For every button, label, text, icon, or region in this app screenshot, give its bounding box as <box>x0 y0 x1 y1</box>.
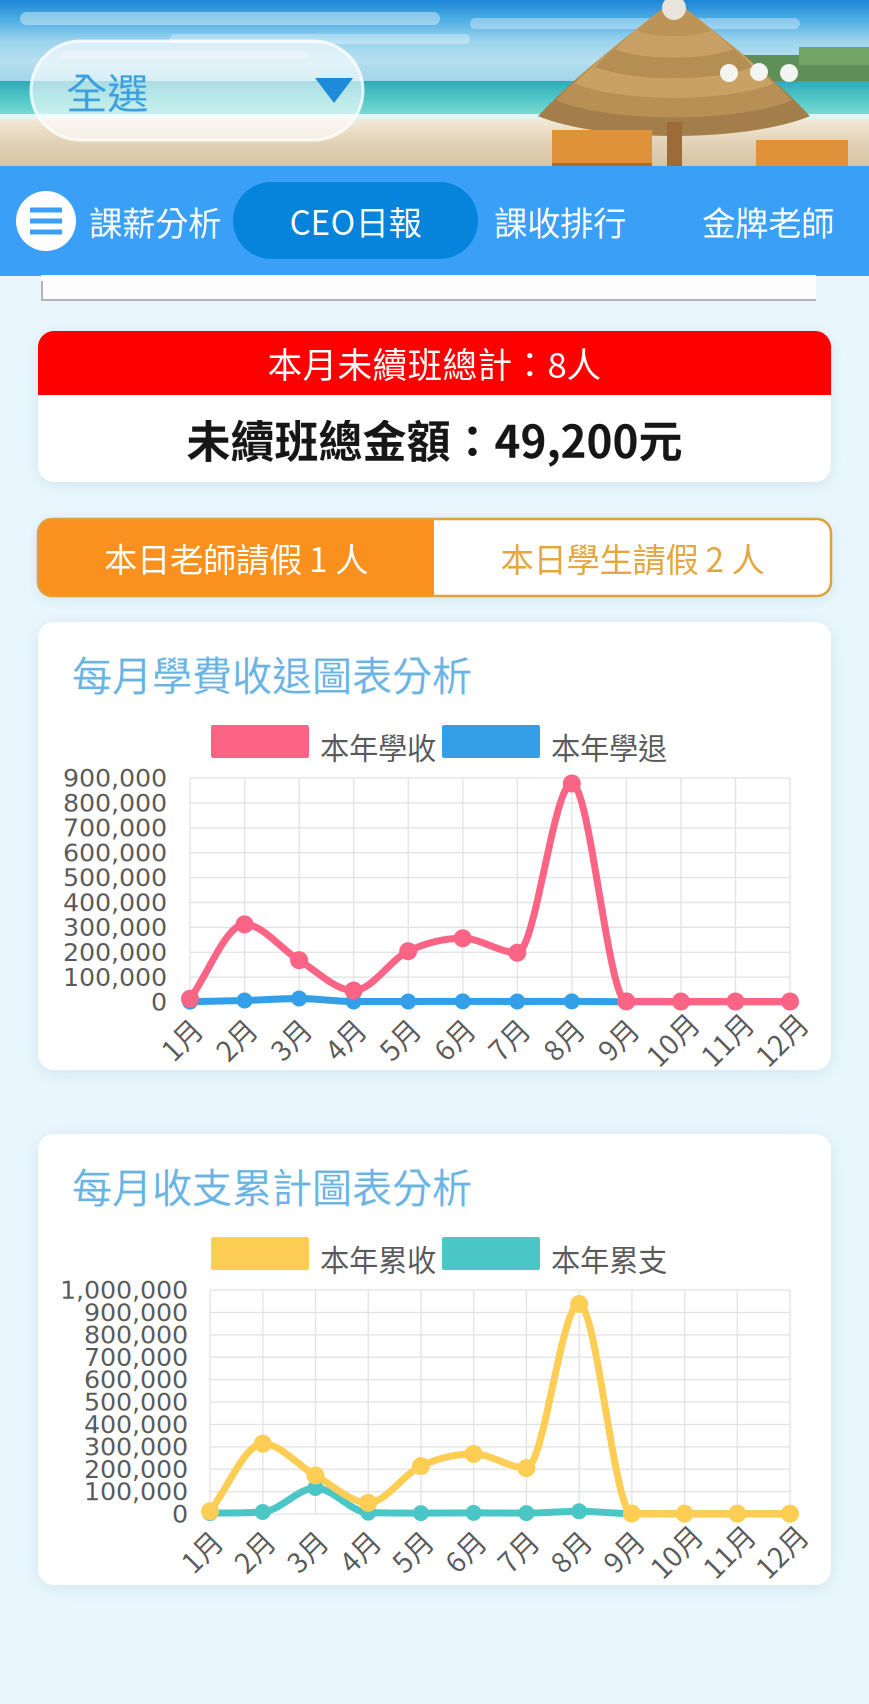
button[interactable]: 金牌老師 <box>698 193 838 249</box>
staticText: 本年累收 <box>320 1237 436 1279</box>
staticText: 11月 <box>696 1019 756 1059</box>
staticText: 5月 <box>390 1531 434 1571</box>
button[interactable]: 課收排行 <box>490 193 630 249</box>
staticText: 6月 <box>443 1531 487 1571</box>
staticText: 700,000 <box>63 813 167 842</box>
staticText: 本月未續班總計：8人 <box>267 338 601 388</box>
staticText: 900,000 <box>84 1298 188 1327</box>
staticText: 0 <box>172 1499 188 1529</box>
staticText: 10月 <box>645 1531 705 1571</box>
staticText: 800,000 <box>63 788 167 818</box>
staticText: 金牌老師 <box>702 197 834 245</box>
staticText: 課收排行 <box>494 197 626 245</box>
button[interactable]: 課薪分析 <box>85 193 225 249</box>
button[interactable]: 本日老師請假 1 人 <box>38 519 434 596</box>
staticText: 4月 <box>337 1531 381 1571</box>
staticText: 每月收支累計圖表分析 <box>72 1156 472 1214</box>
staticText: 5月 <box>377 1019 421 1059</box>
staticText: 11月 <box>698 1531 758 1571</box>
staticText: 400,000 <box>84 1410 188 1439</box>
staticText: 500,000 <box>84 1387 188 1417</box>
staticText: 本年學退 <box>551 725 667 767</box>
staticText: 10月 <box>642 1019 702 1059</box>
staticText: 200,000 <box>84 1454 188 1484</box>
staticText: CEO日報 <box>289 196 421 245</box>
staticText: 0 <box>151 987 167 1017</box>
staticText: 600,000 <box>63 838 167 867</box>
staticText: 8月 <box>541 1019 585 1059</box>
staticText: 700,000 <box>84 1342 188 1372</box>
staticText: 2月 <box>232 1531 276 1571</box>
staticText: 300,000 <box>63 913 167 942</box>
staticText: 8月 <box>548 1531 592 1571</box>
staticText: 3月 <box>284 1531 328 1571</box>
staticText: 400,000 <box>63 888 167 917</box>
staticText: 本年學收 <box>320 725 436 767</box>
staticText: 600,000 <box>84 1365 188 1394</box>
staticText: 12月 <box>751 1531 811 1571</box>
staticText: 200,000 <box>63 937 167 967</box>
staticText: 課薪分析 <box>89 197 221 245</box>
staticText: 2月 <box>213 1019 257 1059</box>
staticText: 500,000 <box>63 863 167 892</box>
staticText: 800,000 <box>84 1320 188 1350</box>
staticText: 本日學生請假 2 人 <box>500 533 764 582</box>
staticText: 3月 <box>268 1019 312 1059</box>
staticText: 9月 <box>601 1531 645 1571</box>
button[interactable]: 本日學生請假 2 人 <box>434 519 831 596</box>
staticText: 300,000 <box>84 1432 188 1462</box>
staticText: 1,000,000 <box>60 1275 188 1305</box>
staticText: 1月 <box>159 1019 203 1059</box>
staticText: 4月 <box>323 1019 367 1059</box>
staticText: 未續班總金額：49,200元 <box>186 407 682 470</box>
staticText: 7月 <box>495 1531 539 1571</box>
button[interactable]: 全選 <box>31 41 363 140</box>
staticText: 900,000 <box>63 763 167 793</box>
staticText: 每月學費收退圖表分析 <box>72 644 472 702</box>
staticText: 100,000 <box>63 962 167 992</box>
button[interactable]: Menu <box>16 191 76 251</box>
staticText: 12月 <box>751 1019 811 1059</box>
button[interactable]: CEO日報 <box>233 182 478 259</box>
staticText: 6月 <box>432 1019 476 1059</box>
staticText: 9月 <box>595 1019 639 1059</box>
staticText: 100,000 <box>84 1477 188 1506</box>
staticText: 本日老師請假 1 人 <box>104 533 368 582</box>
staticText: 1月 <box>179 1531 223 1571</box>
staticText: 7月 <box>486 1019 530 1059</box>
staticText: 本年累支 <box>551 1237 667 1279</box>
staticText: 全選 <box>66 61 148 120</box>
